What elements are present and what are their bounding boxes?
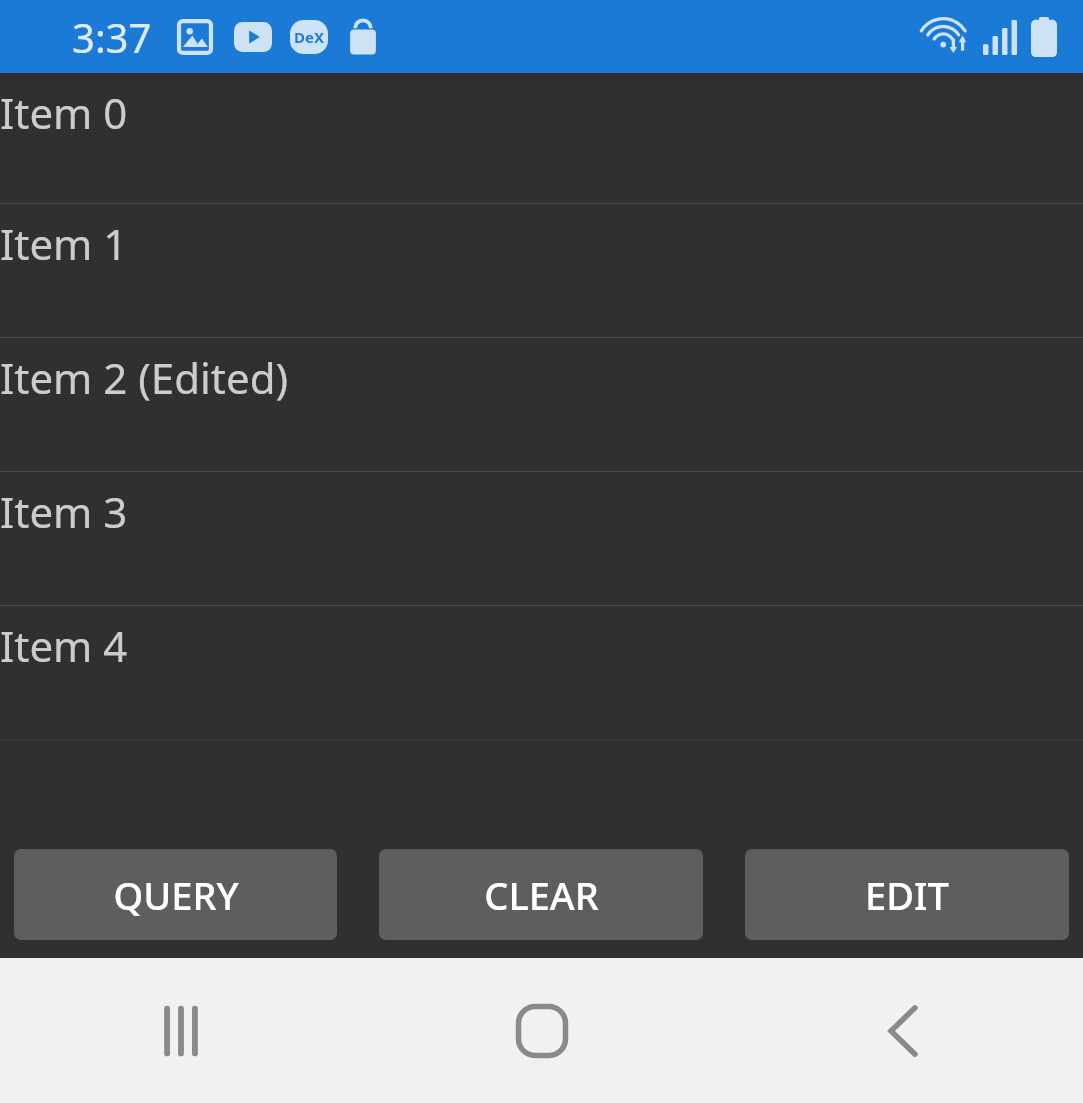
button[interactable]: Item 0 xyxy=(0,73,1083,203)
button[interactable]: Item 3 xyxy=(0,472,1083,605)
staticText: Item 2 (Edited) xyxy=(0,349,289,406)
button[interactable]: Home xyxy=(361,958,722,1103)
staticText: QUERY xyxy=(113,869,239,921)
staticText: DeX xyxy=(294,27,324,47)
button[interactable]: Back xyxy=(722,958,1083,1103)
staticText: Item 3 xyxy=(0,483,128,540)
button[interactable]: CLEAR xyxy=(379,849,703,940)
staticText: 3:37 xyxy=(72,10,152,64)
staticText: EDIT xyxy=(865,869,949,921)
staticText: Item 1 xyxy=(0,215,128,272)
button[interactable]: QUERY xyxy=(14,849,337,940)
button[interactable]: Item 4 xyxy=(0,606,1083,739)
staticText: Item 4 xyxy=(0,617,128,674)
button[interactable]: Item 2 (Edited) xyxy=(0,338,1083,471)
button[interactable]: Item 1 xyxy=(0,204,1083,337)
staticText: Item 0 xyxy=(0,84,128,141)
button[interactable]: Recent apps xyxy=(0,958,361,1103)
button[interactable]: EDIT xyxy=(745,849,1069,940)
staticText: CLEAR xyxy=(484,869,599,921)
